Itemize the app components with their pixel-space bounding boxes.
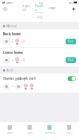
button[interactable]: Profile <box>59 125 79 137</box>
staticText: Run <box>68 58 74 62</box>
button[interactable]: Filter <box>0 13 79 22</box>
button[interactable]: Rooms <box>0 125 20 137</box>
button[interactable]: Back home <box>0 29 79 48</box>
button[interactable]: Account <box>3 7 8 11</box>
button[interactable]: Usage <box>46 6 59 12</box>
staticText: Filter <box>36 16 42 19</box>
button[interactable]: Leave home <box>0 48 79 66</box>
staticText: Scenes <box>27 131 33 134</box>
staticText: Otevírání garážových dveří <box>3 77 36 80</box>
button[interactable]: Enable automation <box>68 76 76 81</box>
button[interactable]: Add <box>71 7 76 11</box>
staticText: Featured <box>22 4 31 12</box>
staticText: Rooms <box>7 131 13 134</box>
staticText: Run <box>68 40 74 43</box>
staticText: Manual <box>6 24 17 28</box>
staticText: Profile <box>35 4 44 12</box>
staticText: Leave home <box>3 51 23 55</box>
button[interactable]: Featured <box>20 4 33 14</box>
button[interactable]: Automation <box>39 125 59 137</box>
button[interactable]: Profile <box>33 4 46 14</box>
staticText: 9:41 <box>39 1 43 4</box>
staticText: + 4 <box>21 40 24 43</box>
button[interactable]: Scenes <box>20 125 40 137</box>
staticText: Usage <box>48 6 56 10</box>
staticText: Auto <box>6 69 13 72</box>
staticText: + 4 <box>21 58 24 62</box>
staticText: Mobile <box>5 1 12 4</box>
staticText: Automation <box>44 131 55 134</box>
staticText: 82% <box>69 1 73 4</box>
staticText: Back home <box>3 32 21 36</box>
staticText: Profile <box>66 131 72 134</box>
